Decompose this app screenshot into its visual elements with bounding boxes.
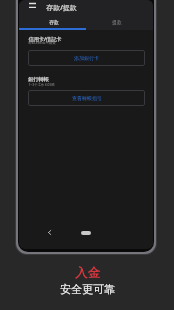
button[interactable]: Home bbox=[81, 231, 91, 235]
staticText: 查看轉帳指引 bbox=[72, 95, 102, 101]
staticText: 存款 bbox=[49, 19, 59, 25]
staticText: 1~3个工作日到賬 bbox=[28, 82, 55, 87]
staticText: 存款/提款 bbox=[46, 3, 77, 13]
staticText: 銀行轉帳 bbox=[28, 76, 49, 83]
staticText: 入金 bbox=[75, 265, 100, 281]
button[interactable]: Back bbox=[45, 228, 54, 237]
button[interactable]: Menu bbox=[25, 0, 40, 13]
button[interactable]: 添加銀行卡 bbox=[28, 50, 145, 66]
staticText: 提款 bbox=[112, 19, 122, 25]
staticText: 安全更可靠 bbox=[60, 282, 115, 296]
staticText: 即時到賬免手續費 bbox=[28, 41, 56, 45]
staticText: 信用卡/借記卡 bbox=[28, 35, 62, 42]
staticText: 添加銀行卡 bbox=[74, 55, 99, 61]
button[interactable]: 查看轉帳指引 bbox=[28, 90, 145, 106]
button[interactable]: 提款 bbox=[86, 16, 153, 30]
button[interactable]: 存款 bbox=[19, 16, 86, 30]
